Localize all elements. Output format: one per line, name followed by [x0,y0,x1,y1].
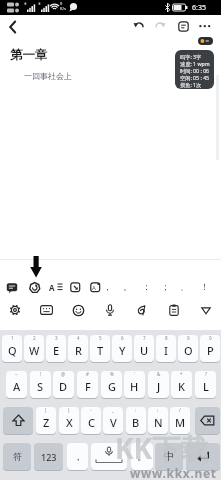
staticText: % [110,371,114,377]
staticText: Y [119,343,126,358]
button[interactable] [90,282,101,293]
button[interactable] [57,283,63,291]
button[interactable]: ) [59,407,79,434]
button[interactable]: 5 [90,335,110,362]
staticText: & [157,371,161,377]
button[interactable]: # [77,371,98,398]
button[interactable]: 1 [2,335,22,362]
staticText: S [37,379,44,394]
button[interactable] [136,305,147,316]
button[interactable]: 3 [46,335,66,362]
button[interactable]: / [170,407,190,434]
button[interactable]: ！ [200,279,207,293]
staticText: N [154,415,163,430]
staticText: 0 [209,335,212,341]
button[interactable]: ， [67,443,88,470]
staticText: 1 [11,335,14,341]
staticText: ? [205,371,207,377]
staticText: A [92,284,96,292]
staticText: * [180,371,183,377]
staticText: E [53,343,60,358]
staticText: ) [68,407,70,413]
button[interactable] [198,24,212,29]
button[interactable] [73,305,84,316]
button[interactable]: 123 [34,443,63,470]
staticText: Q [8,343,17,358]
button[interactable] [105,304,115,316]
button[interactable] [3,407,33,434]
staticText: W [29,343,40,358]
button[interactable] [9,304,21,316]
staticText: H [130,379,139,394]
button[interactable]: @ [53,371,74,398]
staticText: ， [73,450,83,463]
staticText: _ [112,407,114,413]
button[interactable]: 4 [68,335,88,362]
button[interactable]: & [148,371,169,398]
staticText: - [90,407,92,413]
button[interactable] [70,282,81,293]
button[interactable] [178,21,189,32]
button[interactable] [40,305,53,315]
button[interactable]: ( [36,407,56,434]
button[interactable]: ； [161,279,168,293]
button[interactable] [154,20,166,32]
staticText: 8 [165,335,168,341]
button[interactable]: 8 [156,335,176,362]
button[interactable]: % [101,371,122,398]
staticText: ~ [15,371,18,377]
staticText: 摸鱼: 1次 [180,81,202,88]
button[interactable] [6,282,18,293]
staticText: 0 K/s [60,1,66,11]
staticText: 第一章 [10,47,48,63]
button[interactable] [7,19,19,35]
button[interactable] [29,282,41,294]
staticText: 4 [77,335,80,341]
button[interactable] [198,37,213,45]
staticText: G [108,379,116,394]
staticText: ！ [200,281,207,292]
staticText: / [179,407,181,413]
button[interactable] [186,443,220,470]
button[interactable]: ? [195,371,216,398]
button[interactable]: 符 [3,443,31,470]
staticText: www.kkx.net [130,465,217,480]
staticText: 速度: 1 wpm [180,60,210,67]
button[interactable]: 6 [112,335,132,362]
staticText: F [85,379,91,394]
staticText: K [178,379,185,394]
staticText: ； [161,281,168,292]
button[interactable]: ~ [6,371,27,398]
button[interactable]: ! [30,371,51,398]
button[interactable]: ， [103,279,110,293]
button[interactable] [91,443,127,470]
button[interactable]: 0 [200,335,220,362]
button[interactable]: ' [124,371,145,398]
staticText: X [66,415,73,430]
button[interactable] [195,407,220,434]
button[interactable] [133,20,145,32]
button[interactable]: _ [103,407,123,434]
button[interactable]: : [126,407,146,434]
button[interactable]: 9 [178,335,198,362]
button[interactable]: 。 [123,279,130,293]
button[interactable]: 2 [24,335,44,362]
button[interactable]: 中 [155,443,183,470]
staticText: J [157,379,161,394]
button[interactable]: 、 [180,279,187,293]
staticText: 6:35 [192,3,206,13]
button[interactable] [201,307,211,315]
button[interactable]: * [171,371,192,398]
staticText: L [203,379,209,394]
staticText: ; [157,407,159,413]
staticText: 5 [99,335,102,341]
button[interactable] [169,304,179,316]
staticText: 码字: 3字 [180,53,202,60]
button[interactable]: A [49,282,55,293]
staticText: # [86,371,89,377]
button[interactable]: ： [142,279,149,293]
button[interactable]: 。 [131,443,153,470]
button[interactable]: 7 [134,335,154,362]
button[interactable]: ; [148,407,168,434]
button[interactable]: - [81,407,101,434]
